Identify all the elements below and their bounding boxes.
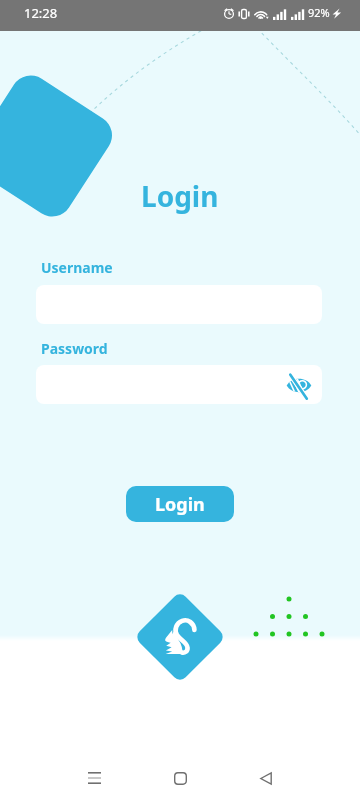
- button[interactable]: Toggle password visibility: [284, 370, 314, 400]
- staticText: Login: [155, 492, 205, 517]
- staticText: 92%: [308, 5, 330, 20]
- staticText: Login: [141, 177, 219, 215]
- staticText: Username: [41, 258, 113, 277]
- button[interactable]: Recents: [70, 754, 118, 800]
- staticText: 12:28: [24, 4, 58, 22]
- button[interactable]: Toggle password visibility: [36, 365, 322, 404]
- button[interactable]: Login: [126, 486, 234, 522]
- button[interactable]: Home: [156, 754, 204, 800]
- button[interactable]: Back: [242, 754, 290, 800]
- staticText: Password: [41, 339, 108, 358]
